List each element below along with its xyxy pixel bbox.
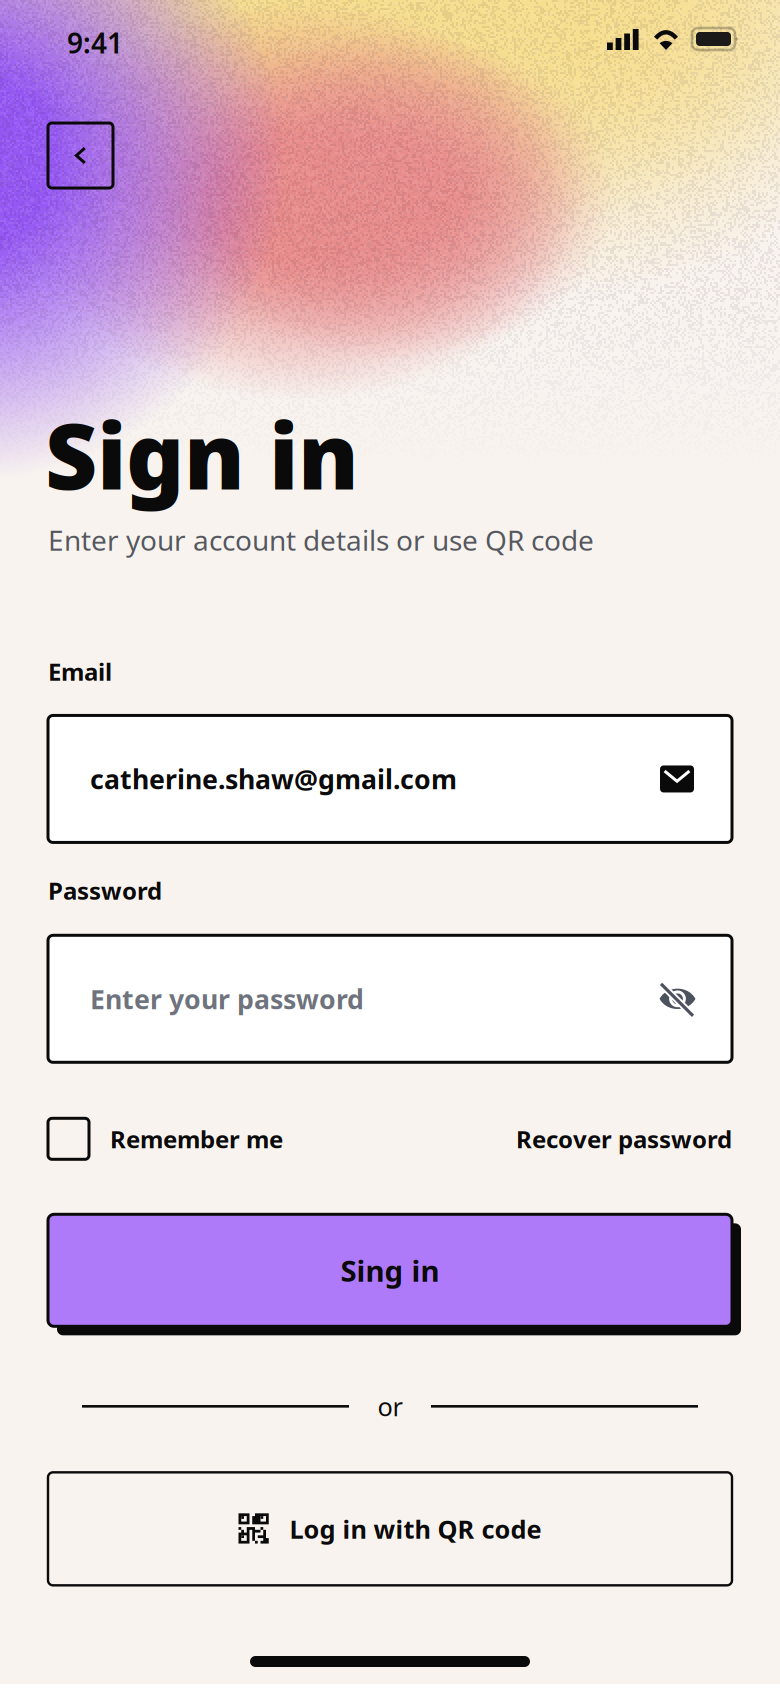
staticText: or bbox=[377, 1389, 402, 1423]
staticText: Enter your password bbox=[90, 981, 364, 1016]
button[interactable]: Remember me bbox=[48, 1118, 283, 1159]
staticText: Recover password bbox=[516, 1123, 732, 1155]
staticText: Sign in bbox=[45, 394, 359, 514]
staticText: Password bbox=[48, 874, 162, 906]
button[interactable]: Log in with QR code bbox=[48, 1472, 732, 1585]
staticText: 9:41 bbox=[67, 24, 123, 61]
staticText: Enter your account details or use QR cod… bbox=[48, 521, 594, 559]
button[interactable]: Back bbox=[48, 123, 113, 188]
staticText: Sing in bbox=[340, 1251, 439, 1290]
staticText: Email bbox=[48, 656, 112, 687]
staticText: Remember me bbox=[110, 1123, 283, 1155]
button[interactable]: Recover password bbox=[516, 1118, 732, 1159]
staticText: catherine.shaw@gmail.com bbox=[90, 761, 457, 797]
button[interactable]: Sing in bbox=[48, 1214, 732, 1326]
staticText: Log in with QR code bbox=[289, 1512, 541, 1546]
